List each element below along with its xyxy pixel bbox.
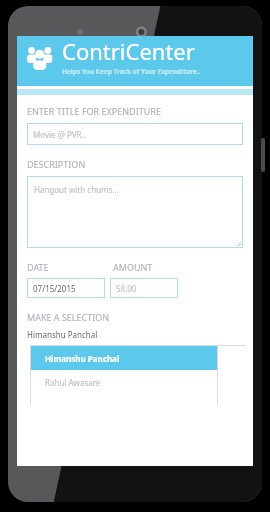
button[interactable]: 07/15/2015	[27, 278, 105, 298]
staticText: Rahul Awasare	[45, 377, 101, 388]
staticText: Helps You Keep Track of Your Expenditure…	[62, 67, 201, 76]
staticText: Himanshu Panchal	[27, 329, 98, 340]
staticText: MAKE A SELECTION	[27, 311, 110, 323]
staticText: Himanshu Panchal	[45, 353, 120, 364]
other: Group	[25, 42, 55, 70]
staticText: 07/15/2015	[33, 283, 76, 294]
staticText: ContriCenter	[62, 36, 195, 66]
staticText: Movie @ PVR..	[33, 129, 86, 140]
staticText: AMOUNT	[113, 261, 153, 273]
button[interactable]: Movie @ PVR..	[27, 123, 243, 145]
button[interactable]: Rahul Awasare	[31, 370, 217, 394]
staticText: ENTER TITLE FOR EXPENDITURE	[27, 105, 161, 117]
staticText: DESCRIPTION	[27, 158, 86, 170]
button[interactable]: Hangout with chums...	[27, 176, 243, 248]
staticText: Hangout with chums...	[34, 184, 119, 195]
staticText: DATE	[27, 261, 49, 273]
button[interactable]: 58.00	[110, 278, 178, 298]
button[interactable]: Himanshu Panchal	[31, 346, 217, 370]
staticText: 58.00	[116, 283, 137, 294]
